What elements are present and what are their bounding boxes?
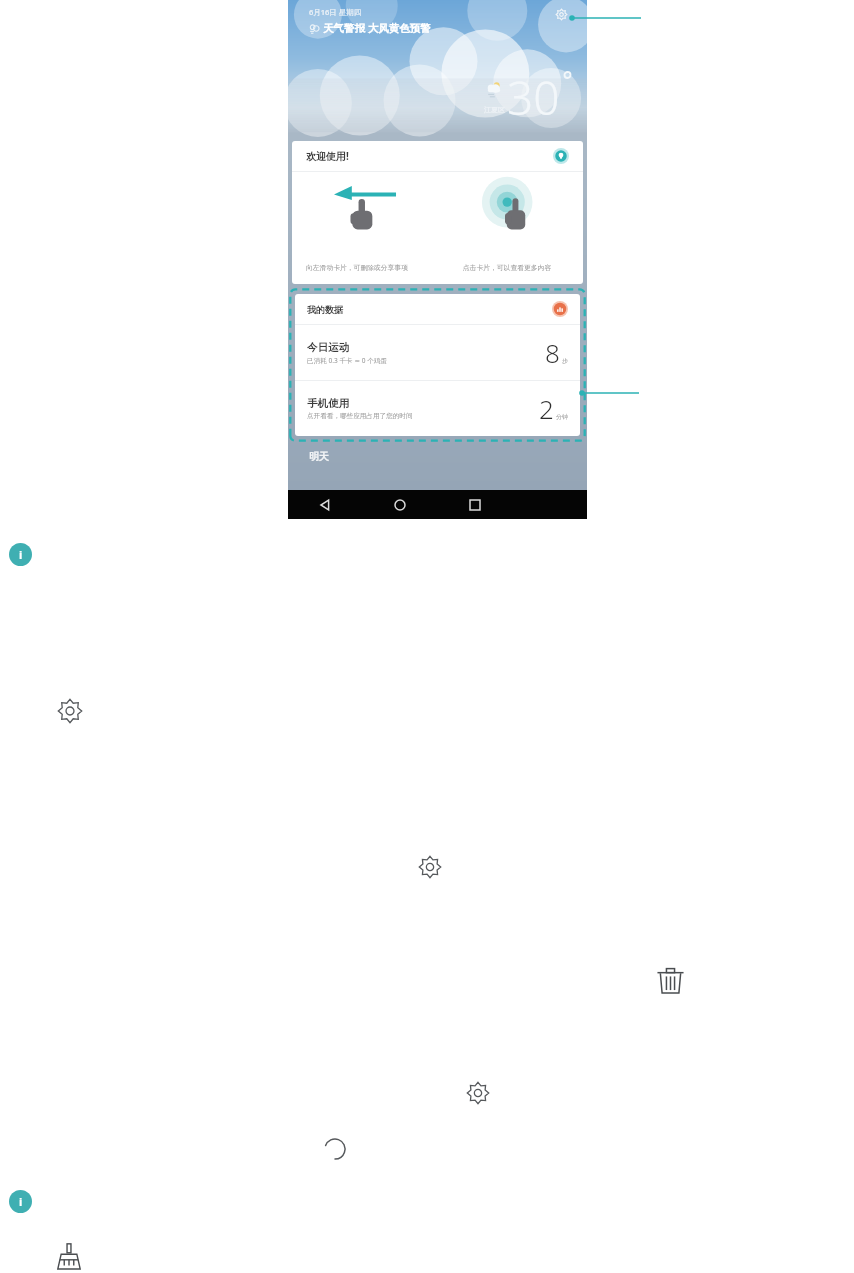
button[interactable]: 最近任务 — [437, 490, 512, 519]
button[interactable]: 我的数据 — [307, 294, 568, 324]
staticText: 分钟 — [556, 413, 568, 421]
other: 删除 — [656, 966, 685, 995]
staticText: i — [19, 1194, 23, 1209]
button[interactable]: 今日运动 — [307, 325, 568, 380]
staticText: 欢迎使用! — [306, 149, 349, 163]
staticText: 点开看看，哪些应用占用了您的时间 — [307, 412, 413, 420]
staticText: 步 — [562, 357, 568, 365]
button[interactable]: 设置 — [553, 6, 570, 23]
staticText: 6月16日 星期四 — [309, 7, 362, 17]
button[interactable]: 主页 — [362, 490, 437, 519]
staticText: 今日运动 — [307, 341, 349, 354]
staticText: i — [19, 547, 23, 562]
staticText: 已消耗 0.3 千卡 ≈ 0 个鸡蛋 — [307, 356, 387, 365]
button[interactable]: 返回 — [288, 490, 362, 519]
staticText: 8 — [545, 335, 560, 370]
staticText: 天气警报 大风黄色预警 — [323, 21, 431, 35]
staticText: 向左滑动卡片，可删除或分享事项 — [306, 263, 427, 272]
staticText: 30 — [507, 66, 560, 129]
staticText: 江夏区 — [484, 105, 505, 114]
staticText: 我的数据 — [307, 304, 343, 315]
staticText: 明天 — [309, 450, 329, 463]
button[interactable]: 手机使用 — [307, 381, 568, 436]
staticText: 点击卡片，可以查看更多内容 — [437, 263, 577, 272]
button[interactable]: 欢迎使用! — [292, 141, 583, 284]
staticText: 手机使用 — [307, 397, 349, 410]
staticText: 2 — [539, 391, 554, 426]
